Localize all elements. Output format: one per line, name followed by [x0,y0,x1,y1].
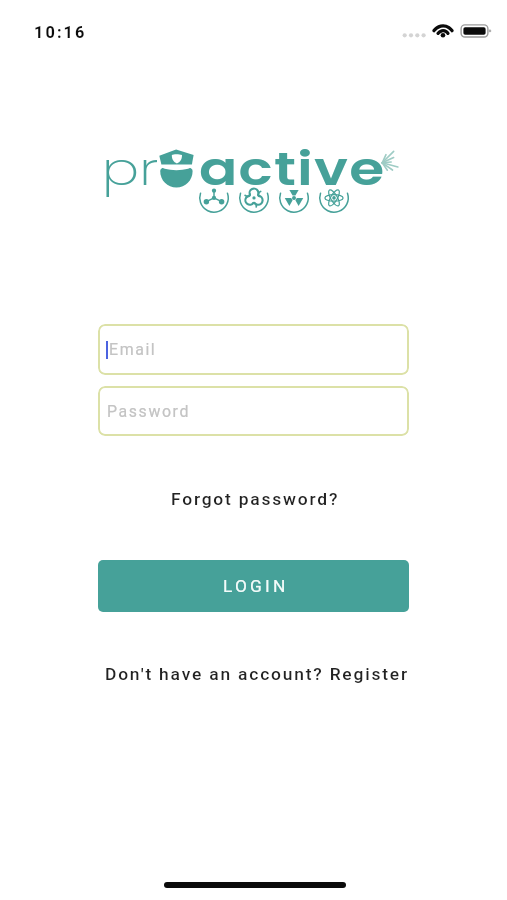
staticText: LOGIN [223,576,289,596]
staticText: 10:16 [34,23,87,42]
button[interactable]: Email [98,324,409,375]
staticText: active [199,137,386,201]
button[interactable]: Don't have an account? Register [99,660,415,688]
staticText: Don't have an account? Register [105,664,409,684]
button[interactable]: Forgot password? [165,485,346,513]
staticText: pr [102,137,160,201]
staticText: Email [109,340,157,359]
staticText: Password [107,402,190,421]
staticText: Forgot password? [171,489,340,509]
button[interactable]: LOGIN [98,560,409,612]
other: Signal, Wi-Fi and battery status [398,0,498,52]
other: proactive [100,136,400,226]
button[interactable]: Password [98,386,409,436]
